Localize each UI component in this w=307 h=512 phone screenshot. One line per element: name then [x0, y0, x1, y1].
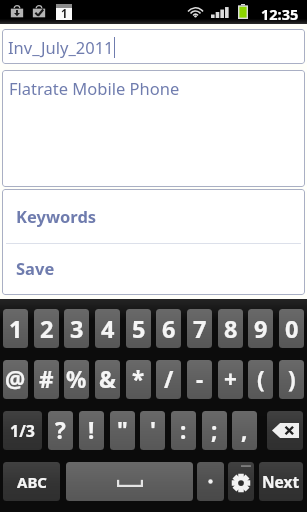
button[interactable]: @ — [3, 360, 28, 399]
staticText: 1 — [61, 6, 68, 22]
button[interactable]: ' — [140, 411, 165, 450]
button[interactable]: Next — [259, 462, 303, 501]
staticText: - — [196, 364, 204, 395]
button[interactable]: Keywords — [2, 189, 305, 243]
staticText: ; — [211, 415, 218, 446]
button[interactable]: 9 — [248, 309, 273, 348]
staticText: @ — [5, 364, 26, 395]
staticText: ! — [88, 415, 95, 446]
staticText: ABC — [17, 472, 47, 492]
staticText: + — [224, 364, 237, 395]
staticText: % — [66, 364, 87, 395]
button[interactable]: ! — [79, 411, 104, 450]
button[interactable]: 4 — [95, 309, 120, 348]
button[interactable]: Flatrate Mobile Phone — [2, 70, 305, 187]
button[interactable]: Delete — [267, 411, 303, 450]
button[interactable]: ( — [248, 360, 273, 399]
staticText: Save — [16, 257, 55, 279]
staticText: 8 — [224, 313, 238, 345]
button[interactable]: ? — [48, 411, 73, 450]
button[interactable]: 5 — [126, 309, 151, 348]
staticText: 1/3 — [10, 420, 35, 442]
staticText: ) — [288, 364, 296, 395]
button[interactable]: 8 — [218, 309, 243, 348]
staticText: : — [180, 415, 187, 446]
button[interactable]: Inv_July_2011 — [2, 29, 305, 64]
staticText: 7 — [193, 313, 207, 345]
staticText: Flatrate Mobile Phone — [9, 77, 180, 99]
staticText: # — [39, 364, 54, 395]
button[interactable]: / — [156, 360, 181, 399]
button[interactable]: - — [187, 360, 212, 399]
button[interactable]: 6 — [156, 309, 181, 348]
staticText: * — [132, 364, 145, 395]
staticText: / — [164, 364, 174, 395]
button[interactable]: 3 — [64, 309, 89, 348]
staticText: ( — [257, 364, 265, 395]
staticText: & — [99, 364, 116, 395]
staticText: " — [117, 415, 128, 446]
staticText: 6 — [162, 313, 176, 345]
button[interactable]: * — [126, 360, 151, 399]
staticText: 0 — [285, 313, 299, 345]
staticText: 2 — [40, 313, 54, 345]
staticText: 1 — [9, 313, 23, 345]
staticText: 9 — [254, 313, 268, 345]
button[interactable]: 2 — [34, 309, 59, 348]
button[interactable]: ) — [279, 360, 304, 399]
staticText: , — [241, 415, 248, 446]
button[interactable]: ABC — [3, 462, 60, 501]
button[interactable]: " — [110, 411, 135, 450]
button[interactable]: 0 — [279, 309, 304, 348]
button[interactable]: ; — [202, 411, 227, 450]
button[interactable] — [197, 462, 224, 501]
button[interactable]: + — [218, 360, 243, 399]
button[interactable]: 1/3 — [3, 411, 42, 450]
button[interactable]: Settings — [228, 462, 254, 501]
button[interactable]: Space — [66, 462, 193, 501]
staticText: 3 — [70, 313, 84, 345]
staticText: 12:35 — [261, 4, 299, 24]
staticText: ' — [150, 415, 156, 446]
button[interactable]: , — [232, 411, 257, 450]
staticText: 5 — [132, 313, 146, 345]
staticText: Inv_July_2011 — [8, 36, 114, 58]
staticText: Next — [262, 471, 300, 492]
button[interactable]: 1 — [3, 309, 28, 348]
button[interactable]: : — [171, 411, 196, 450]
button[interactable]: & — [95, 360, 120, 399]
button[interactable]: 7 — [187, 309, 212, 348]
staticText: ? — [55, 415, 66, 446]
staticText: 4 — [101, 313, 115, 345]
button[interactable]: % — [64, 360, 89, 399]
button[interactable]: Save — [2, 244, 305, 295]
button[interactable]: # — [34, 360, 59, 399]
staticText: Keywords — [16, 205, 97, 227]
